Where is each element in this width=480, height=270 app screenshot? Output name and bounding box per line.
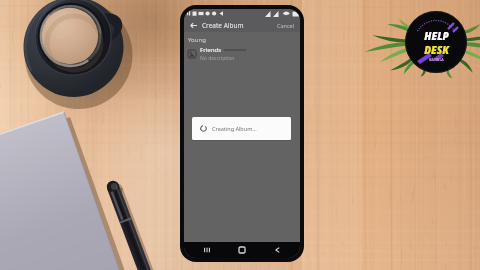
staticText: Young [188, 36, 206, 44]
staticText: Friends [200, 46, 222, 54]
button[interactable]: Recent apps [195, 242, 219, 258]
button[interactable]: Back [265, 242, 289, 258]
staticText: HELP [424, 29, 449, 43]
staticText: Creating Album... [212, 125, 257, 132]
button[interactable]: Back [188, 19, 199, 31]
button[interactable]: Friends [184, 45, 300, 63]
button[interactable]: Cancel [276, 22, 296, 29]
button[interactable]: Home [230, 242, 254, 258]
staticText: Cancel [277, 22, 295, 29]
staticText: DESK [424, 43, 449, 57]
staticText: Create Album [202, 21, 244, 30]
staticText: BANGLA [429, 57, 444, 62]
staticText: No description [200, 55, 235, 62]
